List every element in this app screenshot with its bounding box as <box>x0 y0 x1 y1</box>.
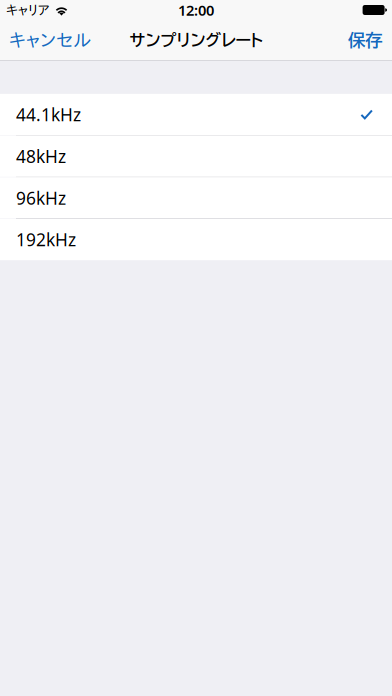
button[interactable]: 48kHz <box>0 136 392 177</box>
button[interactable]: 保存 <box>340 20 392 60</box>
staticText: キャンセル <box>9 31 91 49</box>
staticText: サンプリングレート <box>129 32 262 48</box>
button[interactable]: 96kHz <box>0 177 392 218</box>
staticText: 12:00 <box>178 0 214 20</box>
staticText: 保存 <box>348 31 382 49</box>
staticText: 192kHz <box>16 228 76 251</box>
staticText: キャリア <box>6 3 50 17</box>
button[interactable]: 192kHz <box>0 219 392 260</box>
staticText: 48kHz <box>16 145 66 168</box>
staticText: 96kHz <box>16 186 66 209</box>
button[interactable]: 44.1kHz <box>0 94 392 135</box>
button[interactable]: キャンセル <box>0 20 99 60</box>
staticText: 44.1kHz <box>16 103 81 126</box>
